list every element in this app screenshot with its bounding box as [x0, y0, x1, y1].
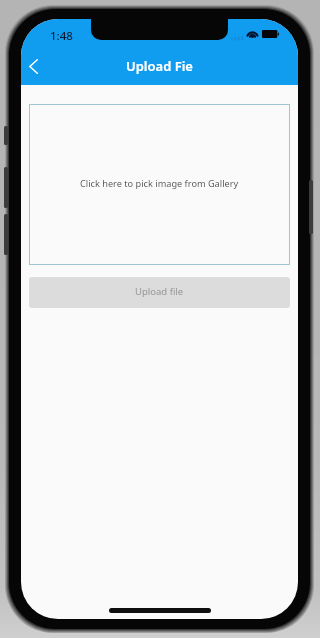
button[interactable]: Upload file — [29, 277, 290, 308]
staticText: Upload Fie — [126, 57, 193, 75]
button[interactable]: Click here to pick image from Gallery — [29, 104, 290, 265]
staticText: Upload file — [135, 285, 184, 298]
staticText: 1:48 — [50, 28, 73, 44]
button[interactable]: Back — [21, 49, 45, 83]
staticText: Click here to pick image from Gallery — [80, 177, 239, 190]
